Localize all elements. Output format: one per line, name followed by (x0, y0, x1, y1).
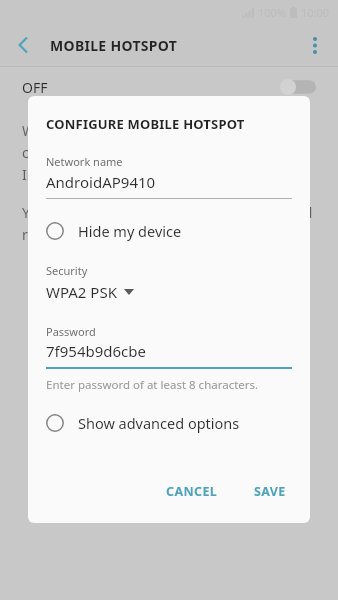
button[interactable]: CANCEL (156, 477, 228, 506)
button[interactable]: Password (28, 324, 310, 393)
staticText: Enter password of at least 8 characters. (46, 377, 259, 393)
button[interactable]: More options (296, 26, 334, 64)
button[interactable]: SAVE (244, 477, 296, 506)
staticText: AndroidAP9410 (46, 172, 156, 192)
staticText: Security (46, 263, 88, 278)
button[interactable]: Hide my device (28, 215, 310, 247)
staticText: Show advanced options (78, 413, 240, 433)
staticText: MOBILE HOTSPOT (50, 36, 178, 55)
staticText: Internet via your mobile network. (22, 165, 243, 184)
button[interactable]: Mobile hotspot toggle (280, 79, 316, 95)
staticText: CONFIGURE MOBILE HOTSPOT (46, 115, 245, 133)
staticText: WPA2 PSK (46, 282, 117, 302)
staticText: You can create an allowed device profile… (22, 203, 313, 222)
staticText: Password (46, 324, 96, 339)
button[interactable]: Back (6, 28, 40, 62)
staticText: CANCEL (166, 483, 218, 500)
staticText: Hide my device (78, 221, 182, 241)
button[interactable]: OFF (0, 67, 338, 107)
staticText: OFF (22, 78, 48, 97)
staticText: restrict connections. (22, 225, 156, 244)
staticText: connected devices will have access to th… (22, 143, 292, 162)
button[interactable]: Show advanced options (28, 407, 310, 439)
staticText: Network name (46, 154, 123, 169)
button[interactable]: Security (28, 263, 310, 302)
staticText: When you turn on Mobile hotspot, your (22, 121, 282, 140)
staticText: 7f954b9d6cbe (46, 341, 146, 361)
staticText: SAVE (254, 483, 286, 500)
button[interactable]: Network name (28, 154, 310, 199)
